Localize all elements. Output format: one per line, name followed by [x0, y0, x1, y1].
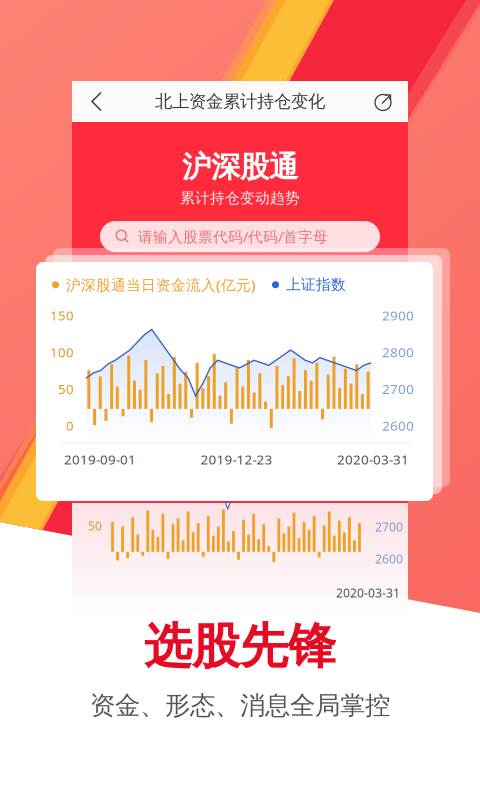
staticText: 资金、形态、消息全局掌控 — [90, 690, 390, 721]
button[interactable]: 返回 — [72, 80, 116, 122]
staticText: 50 — [88, 518, 102, 534]
staticText: 沪深股通当日资金流入(亿元) — [66, 275, 256, 294]
staticText: 2700 — [375, 519, 403, 535]
staticText: 50 — [58, 380, 74, 398]
staticText: 沪深股通 — [182, 149, 298, 185]
staticText: 2600 — [382, 417, 414, 434]
staticText: 2600 — [375, 551, 403, 567]
staticText: 0 — [66, 417, 74, 434]
staticText: 选股先锋 — [144, 617, 336, 676]
staticText: 2019-12-23 — [200, 450, 272, 468]
staticText: 2700 — [382, 380, 414, 398]
staticText: 请输入股票代码/代码/首字母 — [138, 227, 328, 246]
staticText: V — [224, 497, 231, 513]
staticText: 上证指数 — [286, 276, 346, 294]
staticText: 2020-03-31 — [336, 585, 400, 601]
staticText: 2800 — [382, 343, 414, 361]
button[interactable]: 分享 — [364, 80, 408, 122]
staticText: 北上资金累计持仓变化 — [155, 91, 325, 112]
button[interactable]: 请输入股票代码/代码/首字母 — [100, 221, 380, 252]
staticText: 累计持仓变动趋势 — [180, 189, 300, 207]
staticText: 100 — [50, 343, 74, 361]
staticText: 2019-09-01 — [64, 450, 136, 468]
staticText: 2900 — [382, 306, 414, 324]
staticText: 150 — [50, 306, 74, 324]
staticText: 2020-03-31 — [337, 450, 409, 468]
